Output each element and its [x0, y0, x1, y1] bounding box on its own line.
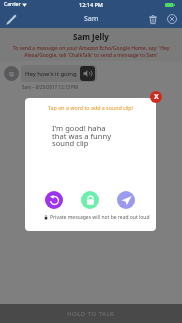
button[interactable]: Undo [45, 191, 63, 209]
staticText: To send a message on your Amazon Echo/Go… [5, 45, 177, 58]
staticText: 12:14 PM [79, 1, 103, 8]
staticText: Hey how's it going [25, 70, 77, 78]
staticText: Tap on a word to add a sound clip! [48, 104, 134, 111]
staticText: X [154, 92, 159, 102]
button[interactable]: Delete [146, 12, 160, 26]
staticText: Sam – 8/25/2017 12:13 PM [22, 84, 78, 90]
button[interactable]: Hey how's it going [21, 65, 97, 82]
staticText: Private messages will not be read out lo… [50, 214, 150, 221]
staticText: Sam [84, 14, 99, 24]
button[interactable]: HOLD TO TALK [0, 304, 182, 323]
staticText: Sam Jelly [73, 31, 109, 42]
staticText: SJ [9, 70, 14, 77]
button[interactable]: Private [81, 191, 99, 209]
button[interactable]: Close dialog [150, 91, 162, 103]
button[interactable]: Send [117, 191, 135, 209]
staticText: HOLD TO TALK [67, 310, 115, 318]
button[interactable]: Compose message [3, 11, 19, 27]
staticText: Carrier [4, 1, 21, 8]
button[interactable]: Close [165, 12, 179, 26]
button[interactable]: Play sound [80, 66, 95, 81]
staticText: I'm good! haha that was a funny sound cl… [52, 123, 112, 148]
